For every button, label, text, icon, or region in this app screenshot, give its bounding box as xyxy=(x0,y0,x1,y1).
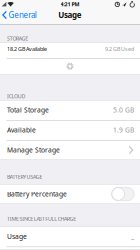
staticText: 5.0 GB xyxy=(113,106,134,114)
staticText: BATTERY USAGE xyxy=(7,173,42,180)
staticText: ICLOUD xyxy=(7,93,25,100)
button[interactable]: Manage Storage xyxy=(0,140,140,160)
button[interactable]: Battery Percentage xyxy=(111,187,134,201)
staticText: Usage xyxy=(58,10,82,20)
staticText: Total Storage xyxy=(7,106,49,114)
staticText: TIME SINCE LAST FULL CHARGE xyxy=(7,215,76,222)
staticText: 4:21 PM xyxy=(60,1,79,8)
staticText: Manage Storage xyxy=(7,146,60,154)
staticText: Usage xyxy=(7,232,27,241)
staticText: General xyxy=(8,10,37,20)
staticText: STORAGE xyxy=(7,35,28,42)
staticText: 18.2 GB Available xyxy=(7,45,47,52)
staticText: – xyxy=(131,234,134,243)
staticText: Available xyxy=(7,126,36,134)
button[interactable]: Back xyxy=(0,7,37,23)
staticText: 1.9 GB xyxy=(113,126,134,134)
staticText: Battery Percentage xyxy=(7,190,67,198)
staticText: 9.2 GB Used xyxy=(105,45,134,52)
